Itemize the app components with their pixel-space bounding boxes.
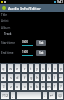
button[interactable]: p	[59, 64, 63, 72]
staticText: a	[2, 75, 5, 80]
staticText: j	[42, 75, 44, 80]
staticText: Audio Info/Editor	[8, 6, 41, 11]
staticText: y	[36, 66, 39, 71]
staticText: Title	[1, 13, 7, 17]
staticText: ?	[60, 84, 62, 89]
button[interactable]: g	[29, 74, 33, 81]
staticText: m	[47, 84, 51, 89]
button[interactable]: i	[47, 64, 51, 72]
staticText: ↵	[50, 93, 54, 98]
button[interactable]: e	[15, 64, 20, 72]
button[interactable]: l	[53, 74, 57, 81]
staticText: Album	[1, 26, 11, 30]
staticText: 1:00	[22, 50, 28, 54]
button[interactable]: c	[22, 83, 27, 90]
button[interactable]: ☺	[57, 92, 63, 99]
staticText: Set	[39, 41, 44, 45]
staticText: !	[54, 84, 56, 89]
staticText: Track	[4, 32, 12, 36]
button[interactable]: n	[41, 83, 45, 90]
button[interactable]: y	[35, 64, 39, 72]
button[interactable]: b	[35, 83, 39, 90]
staticText: b	[36, 84, 39, 89]
button[interactable]: k	[47, 74, 51, 81]
button[interactable]: ↵	[49, 92, 55, 99]
button[interactable]: o	[53, 64, 57, 72]
button[interactable]: Set	[36, 40, 46, 46]
staticText: f	[24, 75, 26, 80]
button[interactable]: !	[53, 83, 57, 90]
button[interactable]: q	[1, 64, 6, 72]
staticText: u	[42, 66, 45, 71]
other: App icon	[1, 5, 7, 11]
button[interactable]: ?	[59, 83, 63, 90]
staticText: z	[10, 84, 12, 89]
staticText: 9:41	[57, 0, 63, 4]
button[interactable]: ←	[59, 74, 63, 81]
staticText: v	[30, 84, 33, 89]
staticText: c	[24, 84, 26, 89]
staticText: w	[9, 66, 13, 71]
staticText: k	[48, 75, 51, 80]
staticText: ?12	[2, 93, 9, 98]
staticText: Start time	[1, 41, 15, 45]
button[interactable]: r	[22, 64, 27, 72]
staticText: ☺	[58, 93, 63, 98]
staticText: End time	[1, 51, 14, 55]
button[interactable]: h	[35, 74, 39, 81]
staticText: d	[16, 75, 19, 80]
button[interactable]	[17, 92, 41, 99]
staticText: i	[48, 66, 50, 71]
staticText: l	[54, 75, 56, 80]
button[interactable]: d	[15, 74, 20, 81]
staticText: t	[30, 66, 32, 71]
button[interactable]: j	[41, 74, 45, 81]
staticText: Set	[39, 51, 44, 55]
staticText: q	[2, 66, 5, 71]
staticText: .	[44, 93, 46, 98]
staticText: ,	[12, 93, 14, 98]
staticText: r	[24, 66, 26, 71]
button[interactable]: w	[8, 64, 13, 72]
button[interactable]: x	[15, 83, 20, 90]
button[interactable]: 1:00	[22, 50, 33, 56]
staticText: s	[10, 75, 12, 80]
staticText: g	[30, 75, 33, 80]
button[interactable]: f	[22, 74, 27, 81]
button[interactable]: u	[41, 64, 45, 72]
button[interactable]: ,	[11, 92, 15, 99]
button[interactable]: ?12	[1, 92, 9, 99]
button[interactable]: t	[29, 64, 33, 72]
staticText: e	[16, 66, 19, 71]
button[interactable]: z	[8, 83, 13, 90]
staticText: ←	[59, 75, 63, 80]
button[interactable]: v	[29, 83, 33, 90]
staticText: 0:00	[22, 40, 28, 44]
staticText: Artist	[1, 19, 9, 23]
button[interactable]: ⇧	[1, 83, 6, 90]
button[interactable]: a	[1, 74, 6, 81]
button[interactable]: m	[47, 83, 51, 90]
staticText: x	[16, 84, 19, 89]
staticText: p	[60, 66, 63, 71]
staticText: ⇧	[2, 84, 6, 89]
staticText: n	[42, 84, 45, 89]
button[interactable]: Set	[36, 50, 46, 56]
button[interactable]: s	[8, 74, 13, 81]
button[interactable]: 0:00	[22, 40, 33, 46]
staticText: h	[36, 75, 39, 80]
button[interactable]: q	[0, 63, 64, 100]
button[interactable]: .	[43, 92, 47, 99]
staticText: o	[54, 66, 57, 71]
